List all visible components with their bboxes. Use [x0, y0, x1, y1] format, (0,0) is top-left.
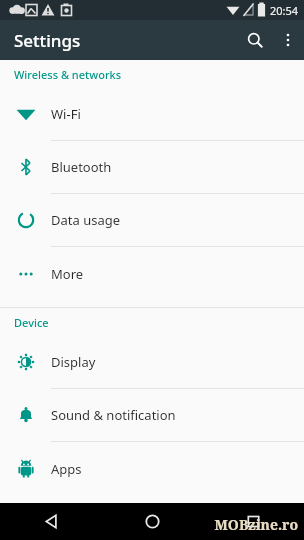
staticText: MOBzine.ro — [214, 515, 298, 534]
button[interactable]: More — [0, 247, 304, 300]
button[interactable]: Sound & notification — [0, 389, 304, 441]
button[interactable]: Back — [0, 503, 102, 540]
button[interactable]: Data usage — [0, 194, 304, 246]
staticText: Bluetooth — [51, 158, 112, 176]
button[interactable]: Recent apps — [203, 503, 304, 540]
button[interactable]: Bluetooth — [0, 141, 304, 193]
staticText: Apps — [51, 460, 82, 478]
staticText: Wi-Fi — [51, 105, 81, 123]
button[interactable]: Search — [238, 23, 272, 57]
staticText: Data usage — [51, 211, 121, 229]
staticText: Wireless & networks — [14, 67, 122, 82]
staticText: Settings — [14, 29, 81, 52]
staticText: More — [51, 265, 84, 283]
button[interactable]: More options — [272, 24, 304, 56]
staticText: Sound & notification — [51, 406, 176, 424]
button[interactable]: Apps — [0, 442, 304, 495]
staticText: Display — [51, 353, 96, 371]
button[interactable]: Wi-Fi — [0, 88, 304, 140]
button[interactable]: Home — [102, 503, 203, 540]
staticText: 20:54 — [270, 3, 299, 18]
staticText: Device — [14, 315, 49, 330]
button[interactable]: Display — [0, 336, 304, 388]
